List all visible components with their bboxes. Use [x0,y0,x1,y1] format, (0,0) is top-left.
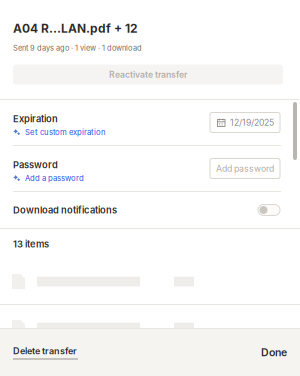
button[interactable]: Delete transfer [13,345,78,359]
staticText: 12/19/2025 [230,117,274,128]
button[interactable]: Done [261,346,287,359]
button[interactable]: Add a password [13,173,84,183]
staticText: Password [13,159,58,170]
staticText: Set custom expiration [25,127,106,137]
button[interactable]: 12/19/2025 [210,112,280,132]
staticText: Delete transfer [13,345,77,356]
staticText: Sent 9 days ago · 1 view · 1 download [13,43,142,52]
button[interactable]: Reactivate transfer [13,65,283,85]
staticText: Reactivate transfer [109,69,187,80]
button[interactable]: Add password [210,158,280,178]
staticText: Expiration [13,113,58,124]
button[interactable]: Set custom expiration [13,127,106,137]
staticText: Done [261,346,287,359]
staticText: Download notifications [13,204,117,216]
staticText: 13 items [13,238,49,250]
button[interactable]: Download notifications [258,204,280,215]
staticText: A04 R...LAN.pdf + 12 [13,21,138,35]
staticText: Add a password [25,173,84,183]
staticText: Add password [216,163,274,174]
